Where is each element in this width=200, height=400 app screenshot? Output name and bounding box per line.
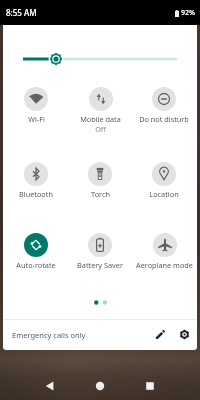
staticText: Auto-rotate bbox=[16, 260, 56, 270]
staticText: Emergency calls only bbox=[12, 330, 86, 340]
button[interactable]: Bluetooth bbox=[4, 160, 68, 208]
staticText: Torch bbox=[91, 189, 110, 199]
button[interactable]: Mobile data bbox=[68, 85, 132, 133]
staticText: Location bbox=[149, 189, 179, 199]
button[interactable]: Home bbox=[90, 376, 110, 396]
button[interactable]: Recents bbox=[140, 376, 160, 396]
staticText: Wi-Fi bbox=[28, 114, 45, 124]
staticText: Off bbox=[95, 124, 106, 133]
staticText: Battery Saver bbox=[77, 260, 123, 270]
button[interactable]: Back bbox=[40, 376, 60, 396]
staticText: Aeroplane mode bbox=[136, 260, 193, 270]
staticText: Bluetooth bbox=[19, 189, 53, 199]
staticText: Mobile data bbox=[80, 114, 121, 124]
button[interactable]: Auto-rotate bbox=[4, 231, 68, 279]
staticText: 92% bbox=[181, 8, 195, 18]
button[interactable]: Emergency calls only bbox=[6, 325, 116, 345]
staticText: Do not disturb bbox=[139, 114, 189, 124]
button[interactable]: Wi-Fi bbox=[4, 85, 68, 133]
staticText: 8:55 AM bbox=[6, 7, 37, 18]
button[interactable]: Edit bbox=[150, 324, 171, 345]
button[interactable]: Torch bbox=[68, 160, 132, 208]
button[interactable]: Aeroplane mode bbox=[132, 231, 196, 279]
button[interactable]: Do not disturb bbox=[132, 85, 196, 133]
button[interactable]: Battery Saver bbox=[68, 231, 132, 279]
button[interactable]: Brightness bbox=[14, 50, 186, 67]
button[interactable]: Settings bbox=[174, 324, 195, 345]
button[interactable]: Location bbox=[132, 160, 196, 208]
